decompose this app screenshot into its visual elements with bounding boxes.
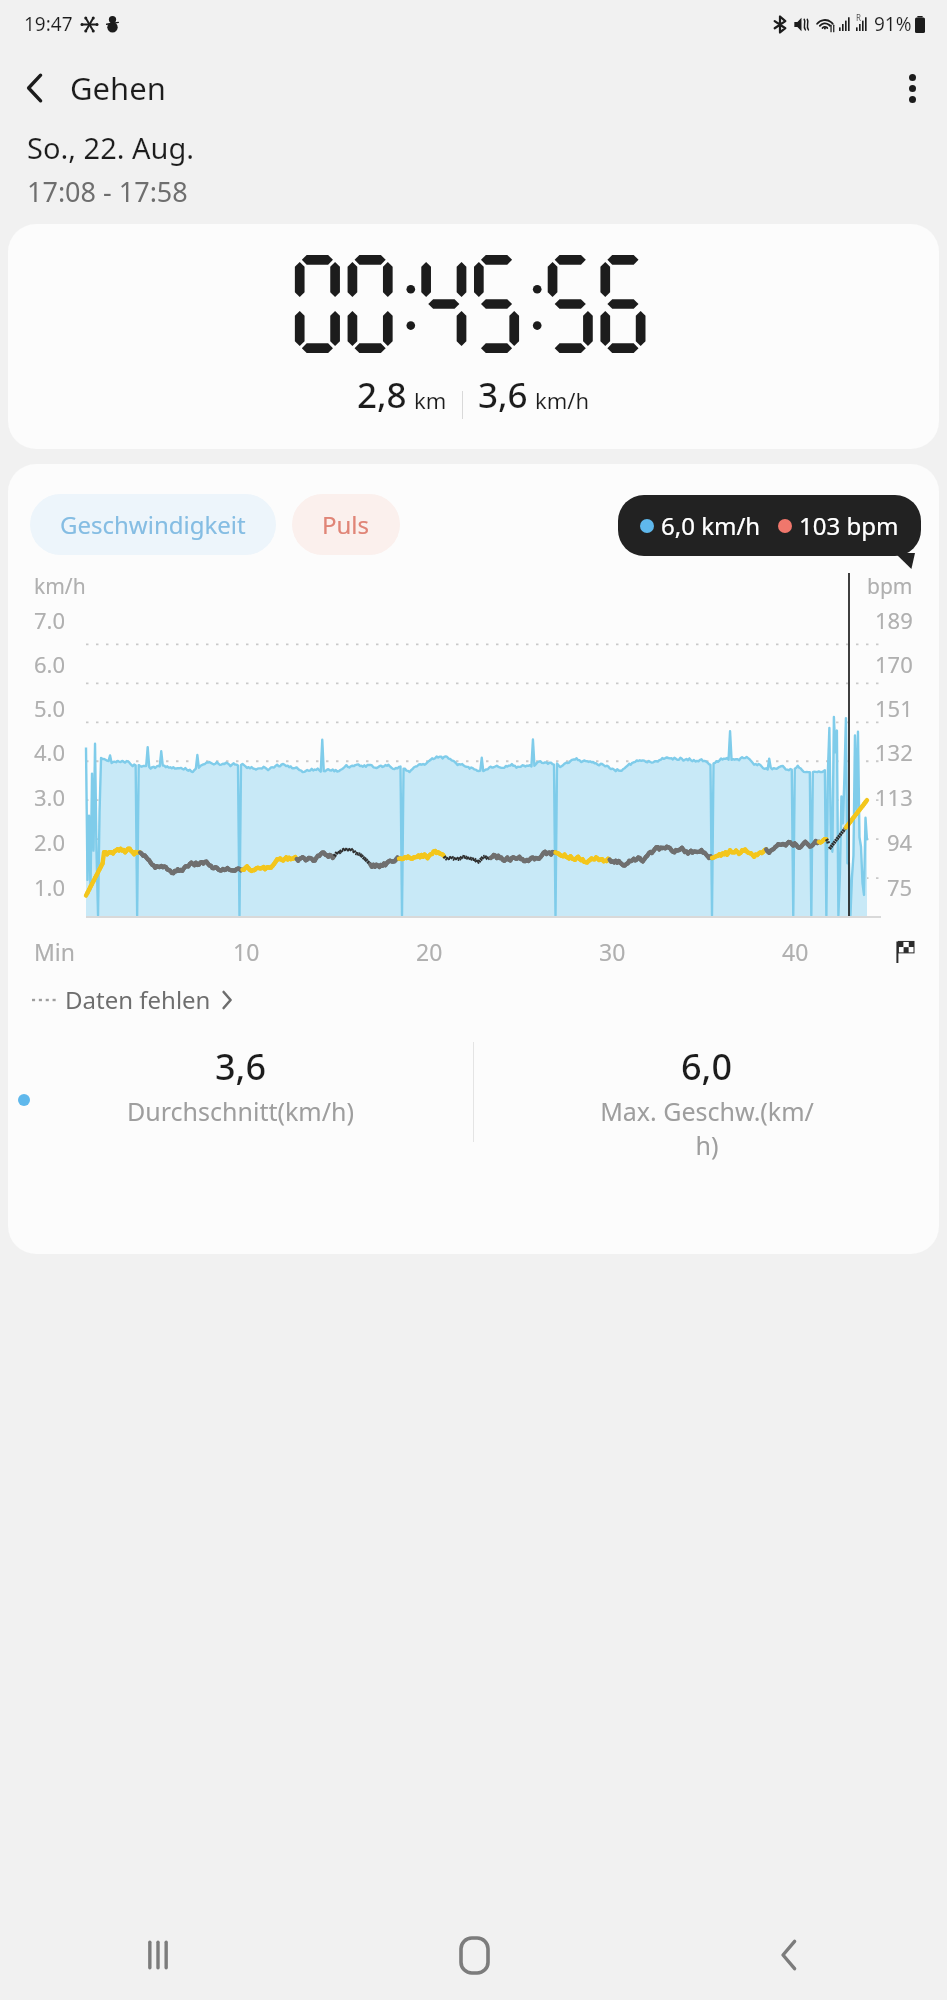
staticText: So., 22. Aug. (27, 128, 195, 167)
staticText: 20 (416, 936, 443, 967)
staticText: R (856, 12, 861, 23)
staticText: 3.0 (34, 782, 66, 812)
staticText: 170 (875, 649, 913, 679)
staticText: 5.0 (34, 693, 66, 723)
button[interactable]: 2,8 (8, 224, 939, 449)
staticText: 6,0 (681, 1042, 733, 1091)
staticText: Durchschnitt(km/h) (127, 1094, 354, 1128)
staticText: 151 (875, 693, 913, 723)
button[interactable]: 6,0 (474, 1042, 939, 1162)
staticText: 40 (782, 936, 809, 967)
staticText: 3,6 (215, 1042, 267, 1091)
staticText: Puls (322, 508, 370, 541)
staticText: Geschwindigkeit (60, 508, 246, 541)
button[interactable]: Geschwindigkeit (30, 494, 276, 555)
button[interactable]: 3,6 (8, 1042, 473, 1128)
staticText: Gehen (70, 67, 166, 109)
staticText: 10 (233, 936, 260, 967)
button[interactable]: Home (424, 1910, 524, 2000)
staticText: 30 (599, 936, 626, 967)
staticText: 189 (875, 605, 913, 635)
staticText: 6,0 km/h (661, 509, 761, 542)
staticText: 91% (874, 11, 912, 37)
staticText: Daten fehlen (65, 983, 211, 1016)
button[interactable]: More options (877, 53, 947, 123)
button[interactable]: Recent apps (108, 1910, 208, 2000)
button[interactable]: Daten fehlen (32, 983, 233, 1016)
staticText: bpm (867, 572, 913, 601)
staticText: 2,8 (357, 371, 407, 419)
staticText: 17:08 - 17:58 (27, 173, 188, 210)
staticText: 3,6 (478, 371, 528, 419)
staticText: Max. Geschw.(km/ h) (600, 1094, 814, 1162)
staticText: 113 (875, 782, 913, 812)
staticText: km (414, 385, 447, 415)
staticText: km/h (535, 385, 590, 415)
button[interactable]: Back (0, 53, 70, 123)
staticText: 1.0 (34, 872, 66, 902)
button[interactable]: Puls (292, 494, 400, 555)
staticText: 4.0 (34, 737, 66, 767)
staticText: 94 (887, 827, 913, 857)
button[interactable]: Back (739, 1910, 839, 2000)
staticText: Min (34, 936, 76, 967)
staticText: 2.0 (34, 827, 66, 857)
staticText: 19:47 (24, 11, 73, 37)
staticText: 103 bpm (799, 509, 899, 542)
button[interactable]: 6,0 km/h (618, 495, 921, 556)
staticText: 6.0 (34, 649, 66, 679)
staticText: 75 (887, 872, 913, 902)
staticText: km/h (34, 572, 86, 601)
staticText: 132 (875, 737, 913, 767)
staticText: 7.0 (34, 605, 66, 635)
